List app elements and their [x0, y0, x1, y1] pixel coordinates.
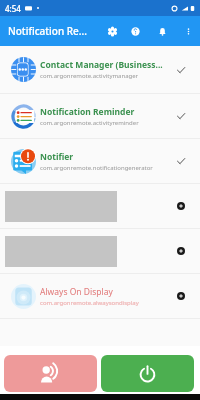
staticText: Notifier: [40, 151, 74, 163]
button[interactable]: [0, 229, 200, 273]
staticText: Contact Manager (Business...: [40, 59, 163, 71]
staticText: com.argonremote.activityreminder: [40, 119, 139, 127]
button[interactable]: Talkback: [4, 355, 97, 392]
button[interactable]: Help: [123, 16, 148, 46]
staticText: com.argonremote.activitymanager: [40, 72, 139, 80]
button[interactable]: Power: [101, 355, 194, 392]
button[interactable]: More options: [176, 16, 200, 46]
staticText: com.argonremote.notificationgenerator: [40, 164, 153, 172]
button[interactable]: Always On Display: [0, 274, 200, 318]
staticText: Always On Display: [40, 286, 113, 298]
staticText: Notification Reminder: [40, 106, 135, 118]
button[interactable]: Settings: [101, 16, 123, 46]
button[interactable]: Notifications: [148, 16, 176, 46]
button[interactable]: Notification Reminder: [0, 94, 200, 138]
button[interactable]: Contact Manager (Business...: [0, 46, 200, 93]
staticText: Notification Re...: [8, 24, 88, 38]
button[interactable]: [0, 184, 200, 228]
button[interactable]: Notifier: [0, 139, 200, 183]
staticText: com.argonremote.alwaysondisplay: [40, 299, 139, 307]
staticText: 4:54: [5, 3, 21, 14]
